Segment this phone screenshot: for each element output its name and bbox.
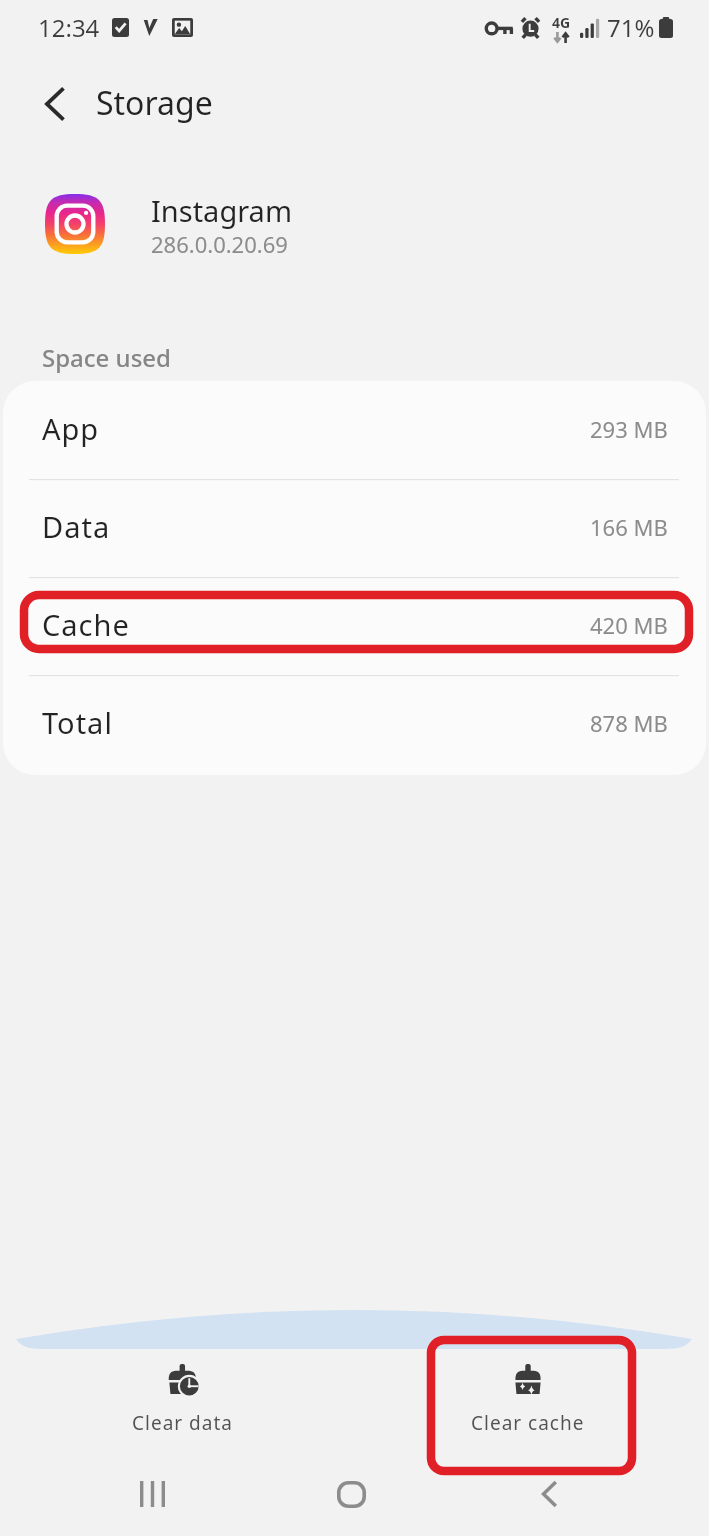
staticText: Cache [42, 605, 130, 644]
staticText: App [42, 409, 100, 448]
staticText: Space used [42, 341, 171, 374]
button[interactable]: Home [292, 1464, 411, 1524]
staticText: Clear data [132, 1410, 233, 1436]
button[interactable]: Cache [3, 577, 706, 675]
staticText: 12:34 [38, 11, 100, 44]
staticText: 71% [607, 11, 655, 44]
button[interactable]: Data [3, 479, 706, 577]
button[interactable]: Clear data [81, 1341, 283, 1459]
staticText: 286.0.0.20.69 [151, 229, 288, 259]
staticText: 166 MB [590, 512, 668, 542]
staticText: Clear cache [471, 1410, 585, 1436]
button[interactable]: Back [490, 1464, 609, 1524]
staticText: 420 MB [590, 610, 668, 640]
button[interactable]: Navigate up [27, 77, 81, 131]
staticText: 878 MB [590, 708, 668, 738]
button[interactable]: Total [3, 675, 706, 773]
staticText: Data [42, 507, 111, 546]
staticText: Total [42, 703, 113, 742]
staticText: 293 MB [590, 414, 668, 444]
button[interactable]: Clear cache [427, 1341, 629, 1459]
staticText: 4G [552, 13, 571, 32]
staticText: Storage [96, 81, 213, 125]
staticText: Instagram [151, 191, 292, 230]
button[interactable]: App [3, 381, 706, 479]
button[interactable]: Recent apps [93, 1464, 212, 1524]
